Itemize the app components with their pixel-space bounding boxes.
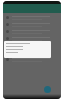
button[interactable] xyxy=(3,42,61,49)
button[interactable] xyxy=(3,28,61,35)
button[interactable]: Add xyxy=(44,86,51,93)
button[interactable] xyxy=(3,49,61,56)
button[interactable] xyxy=(3,35,61,42)
button[interactable] xyxy=(3,56,61,63)
button[interactable] xyxy=(3,14,61,21)
button[interactable] xyxy=(3,21,61,28)
